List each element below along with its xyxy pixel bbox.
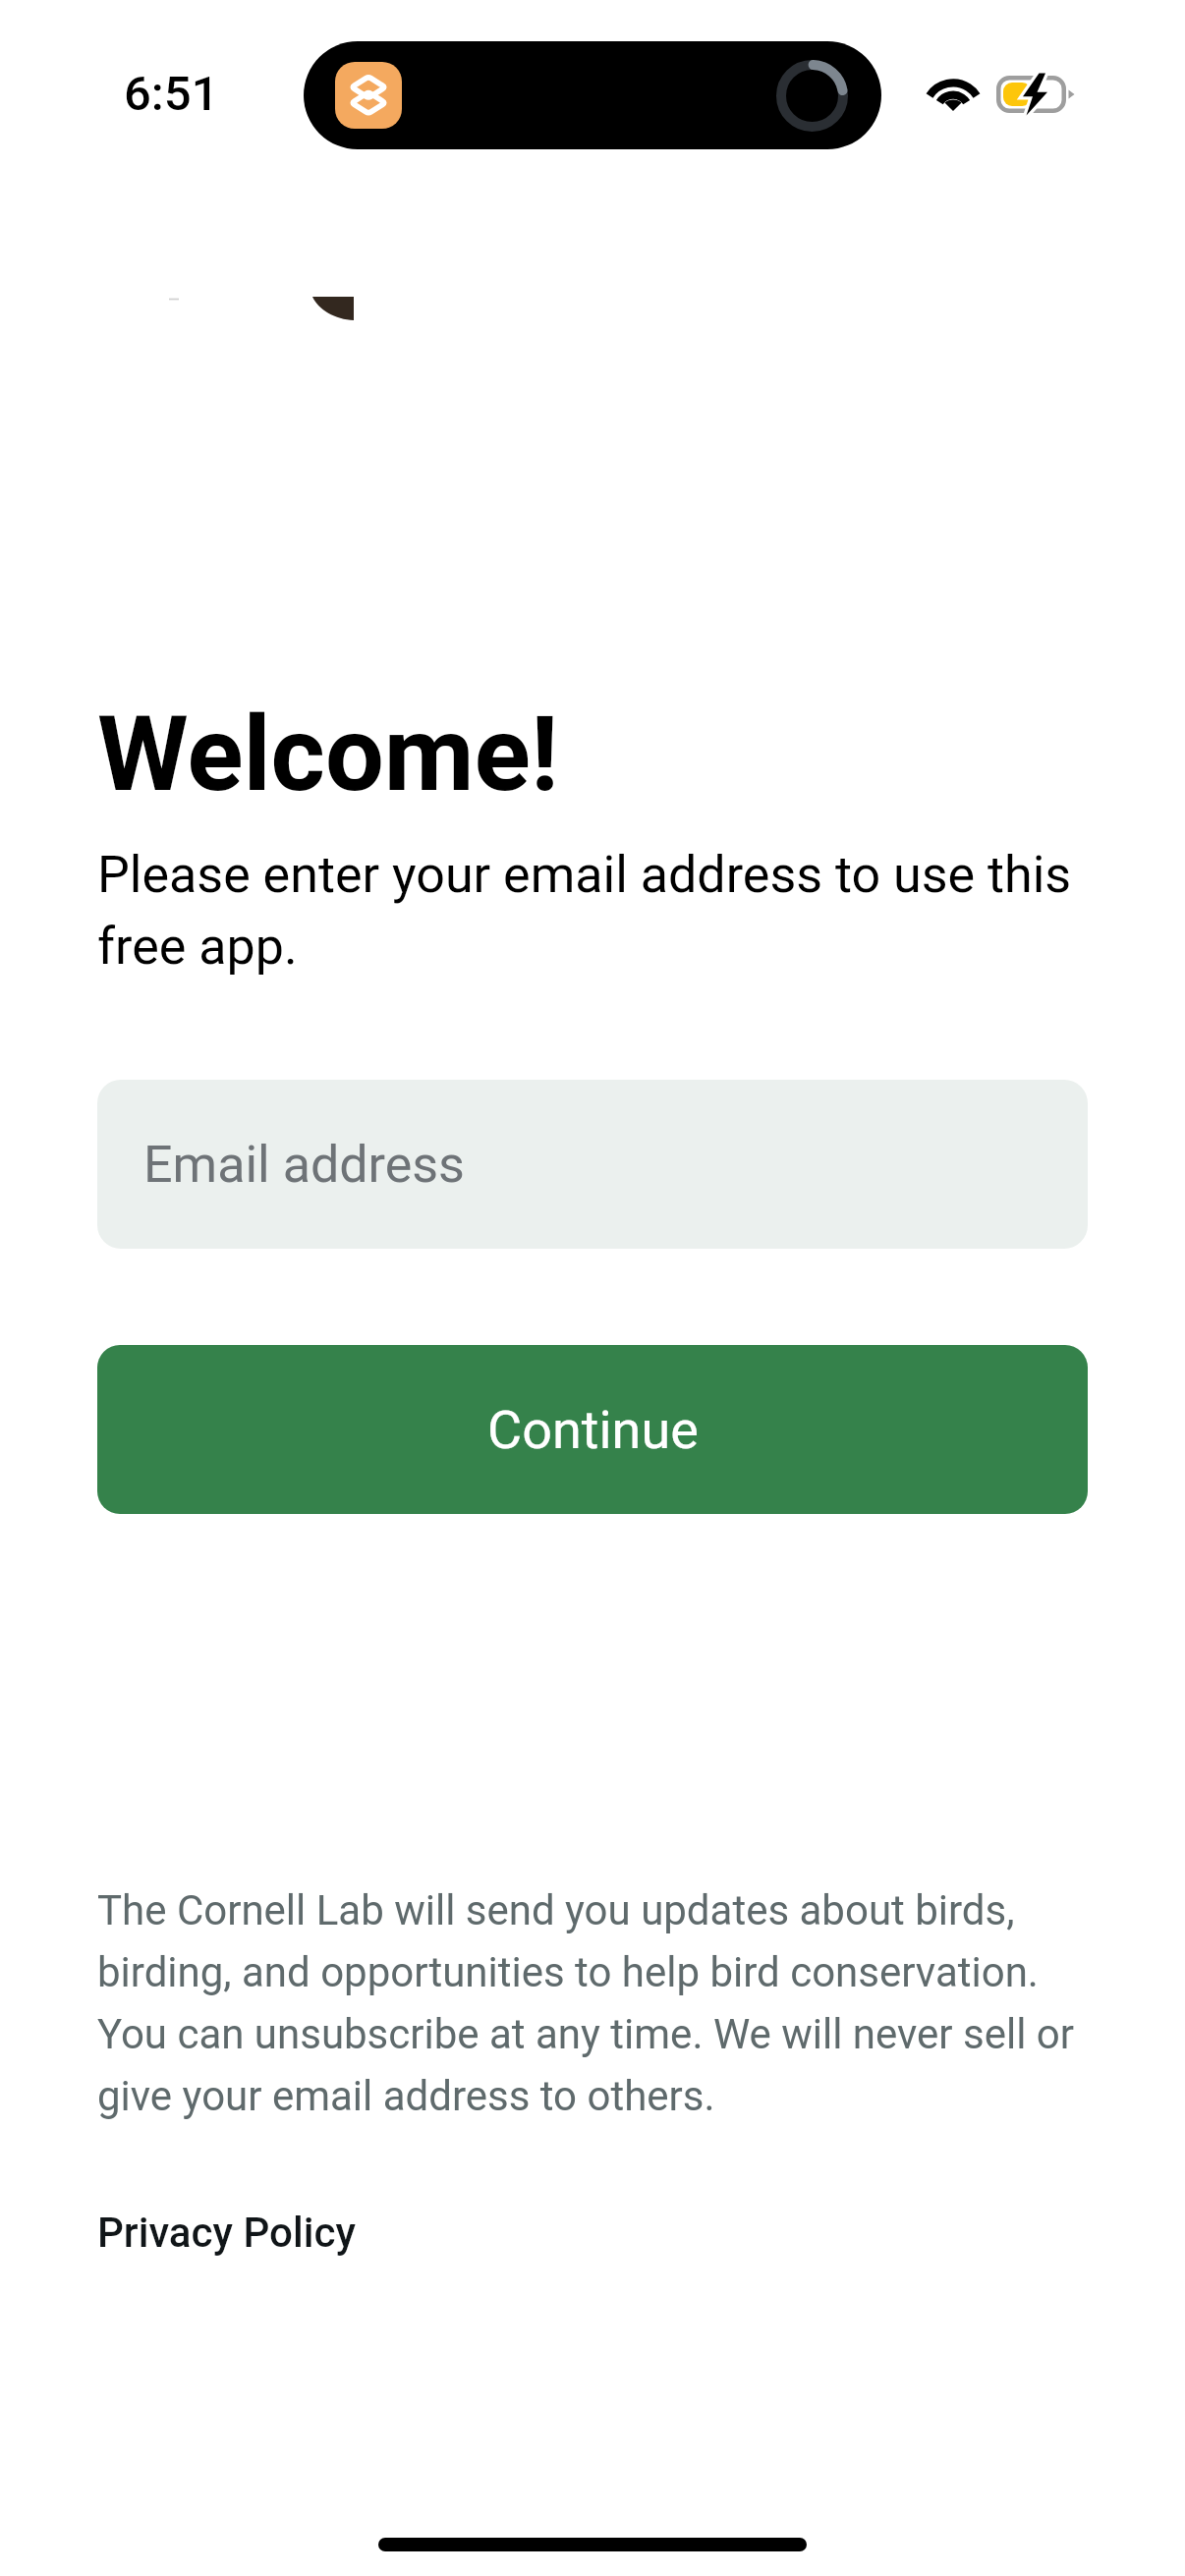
other: Wi-Fi [930, 78, 977, 111]
staticText: Email address [143, 1135, 465, 1195]
button[interactable]: Email address [97, 1080, 1088, 1249]
staticText: Welcome! [97, 695, 559, 814]
staticText: Please enter your email address to use t… [97, 835, 1088, 979]
other: Battery charging [996, 73, 1077, 116]
button[interactable]: Continue [97, 1345, 1088, 1514]
staticText: Privacy Policy [97, 2209, 356, 2257]
staticText: The Cornell Lab will send you updates ab… [97, 1876, 1088, 2123]
staticText: Continue [487, 1399, 699, 1461]
button[interactable]: Privacy Policy [97, 2209, 356, 2257]
staticText: 6:51 [124, 66, 219, 122]
